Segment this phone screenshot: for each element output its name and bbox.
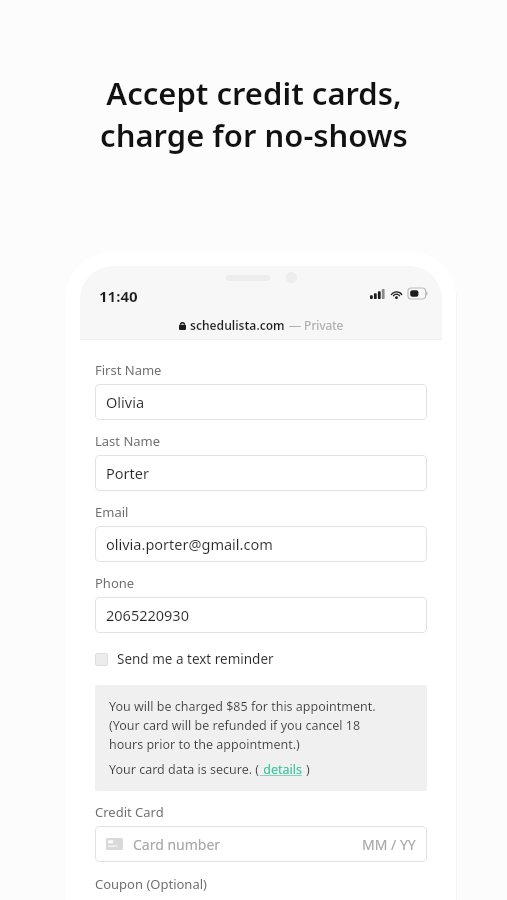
staticText: Email (95, 503, 129, 521)
staticText: 2065220930 (106, 605, 189, 625)
staticText: olivia.porter@gmail.com (106, 534, 273, 554)
button[interactable]: details (260, 761, 306, 778)
staticText: Card number (133, 835, 221, 854)
button[interactable]: 2065220930 (95, 597, 427, 633)
staticText: Porter (106, 463, 149, 483)
staticText: Send me a text reminder (117, 650, 274, 668)
button[interactable]: Olivia (95, 384, 427, 420)
button[interactable]: schedulista.com (179, 317, 344, 333)
staticText: First Name (95, 361, 162, 379)
staticText: Last Name (95, 432, 161, 450)
staticText: MM / YY (362, 835, 416, 854)
button[interactable]: Card number (95, 826, 427, 862)
other: Battery (408, 288, 428, 299)
staticText: Olivia (106, 392, 145, 412)
button[interactable]: olivia.porter@gmail.com (95, 526, 427, 562)
staticText: details (260, 761, 306, 778)
staticText: charge for no-shows (100, 114, 408, 156)
staticText: ) (306, 761, 310, 778)
staticText: You will be charged $85 for this appoint… (109, 698, 376, 752)
button[interactable]: Porter (95, 455, 427, 491)
staticText: 11:40 (99, 286, 138, 306)
staticText: — Private (289, 317, 344, 333)
other: Cellular signal (370, 289, 385, 299)
staticText: Credit Card (95, 803, 164, 821)
button[interactable]: Send me a text reminder (95, 647, 427, 671)
staticText: Coupon (Optional) (95, 875, 207, 893)
staticText: Your card data is secure. ( (109, 761, 260, 778)
staticText: Phone (95, 574, 135, 592)
other: Wi-Fi (390, 287, 403, 300)
staticText: Accept credit cards, (106, 72, 402, 114)
staticText: schedulista.com (190, 317, 285, 333)
